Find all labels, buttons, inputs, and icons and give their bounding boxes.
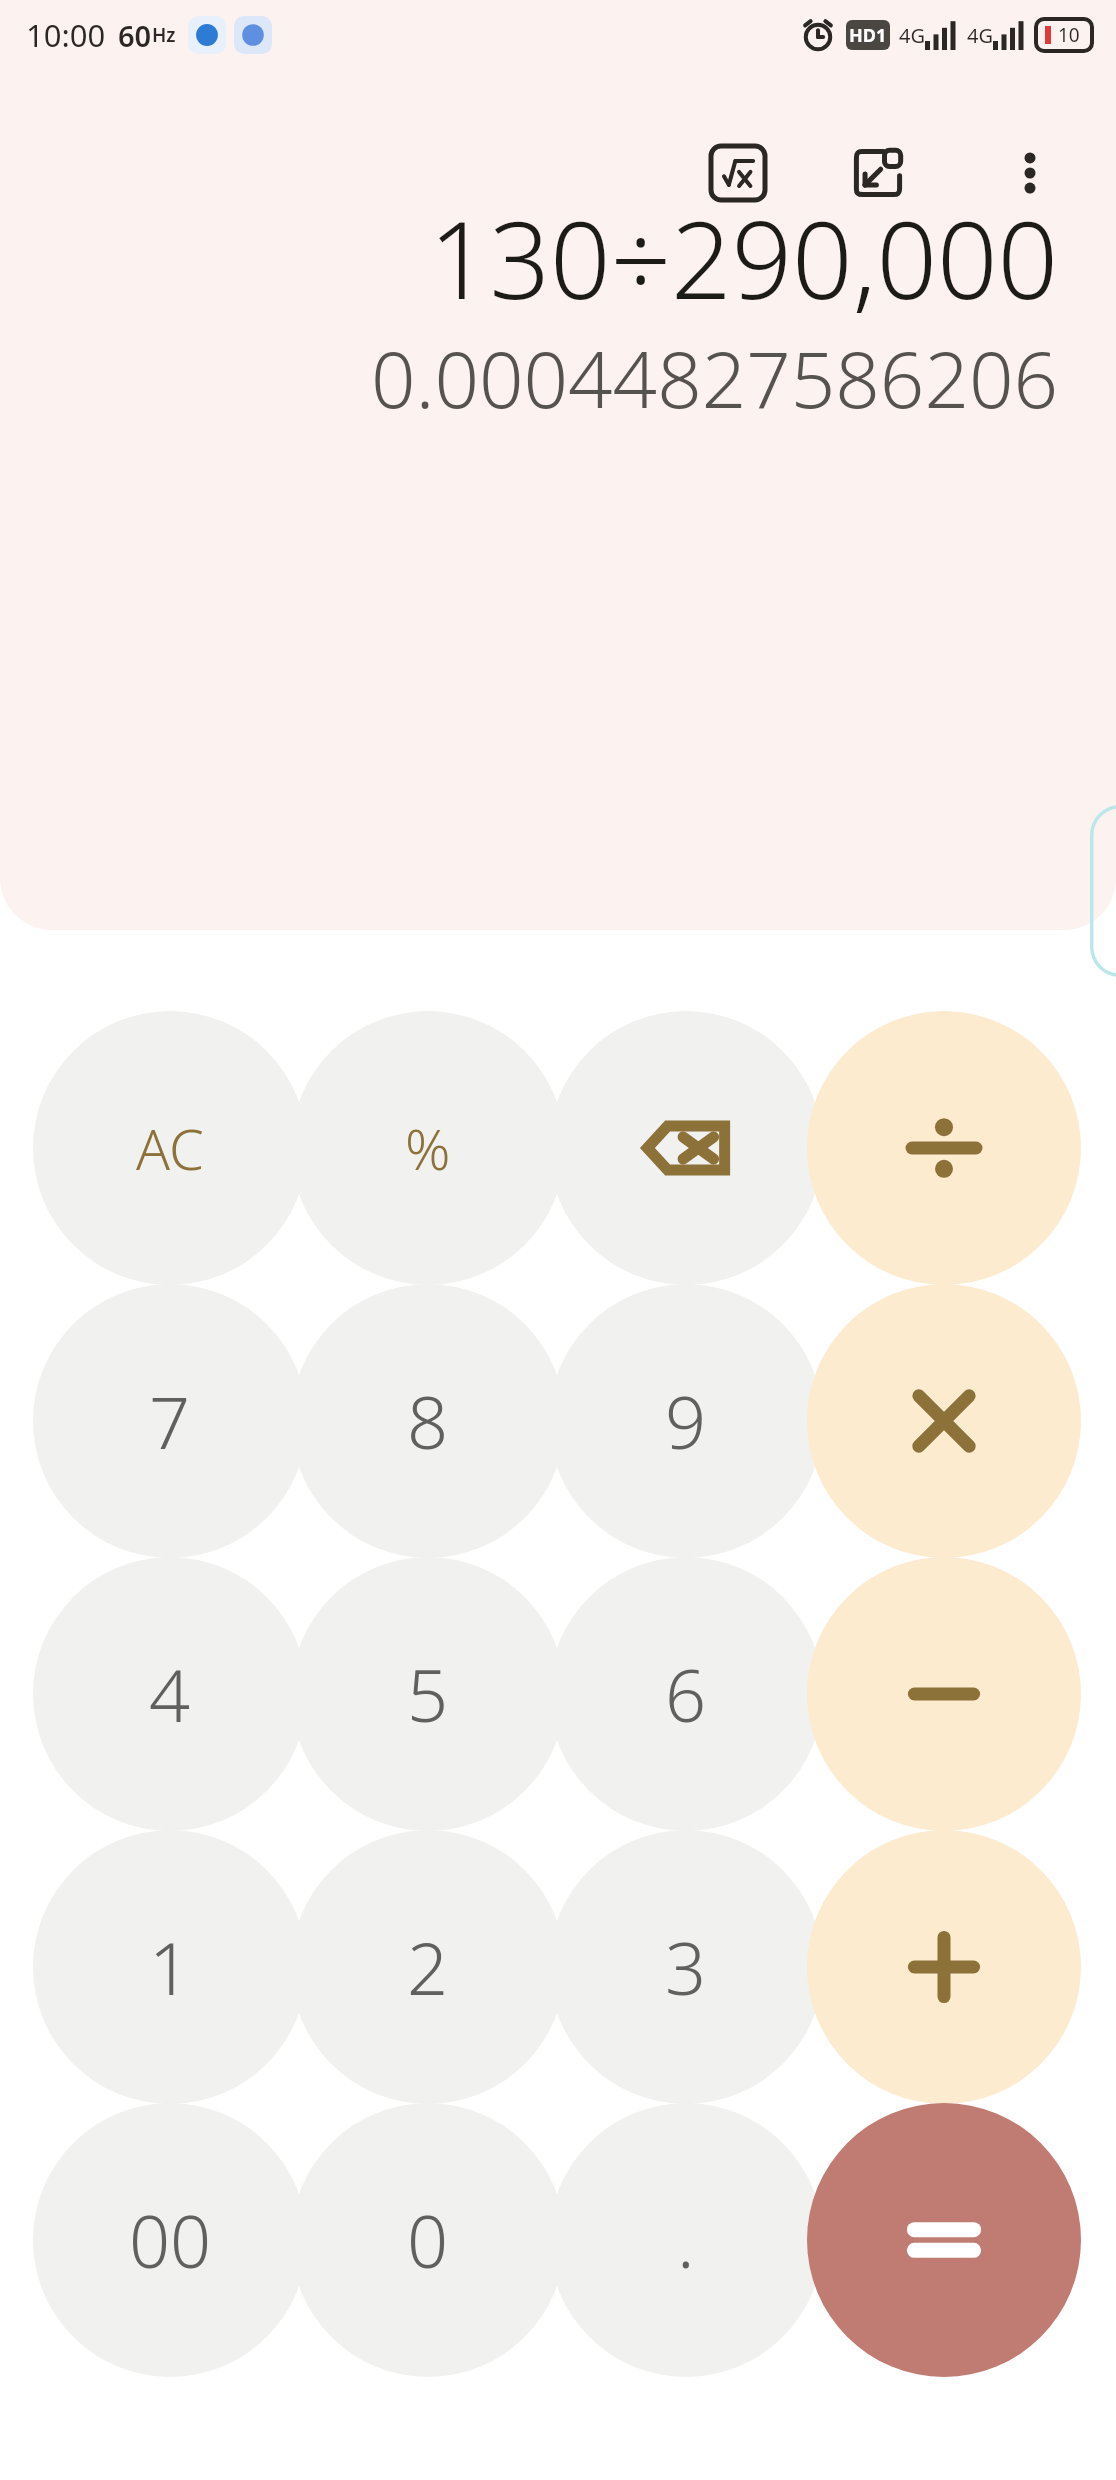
staticText: 0.00044827586206: [0, 325, 1058, 431]
staticText: 60: [118, 16, 152, 55]
staticText: 10:00: [26, 14, 106, 56]
staticText: Hz: [152, 22, 176, 48]
staticText: 4: [149, 1645, 191, 1743]
button[interactable]: 2: [291, 1830, 565, 2104]
staticText: .: [677, 2191, 695, 2289]
button[interactable]: 5: [291, 1557, 565, 1831]
staticText: 3: [665, 1918, 707, 2016]
button[interactable]: %: [291, 1011, 565, 1285]
button[interactable]: 1: [33, 1830, 307, 2104]
staticText: 9: [665, 1372, 707, 1470]
button[interactable]: [807, 1830, 1081, 2104]
button[interactable]: Backspace: [549, 1011, 823, 1285]
button[interactable]: 7: [33, 1284, 307, 1558]
button[interactable]: [807, 1011, 1081, 1285]
staticText: 10: [1058, 22, 1080, 48]
staticText: 7: [149, 1372, 191, 1470]
staticText: 4G: [899, 22, 925, 49]
staticText: 0: [407, 2191, 449, 2289]
button[interactable]: 4: [33, 1557, 307, 1831]
staticText: 6: [665, 1645, 707, 1743]
button[interactable]: [807, 1557, 1081, 1831]
button[interactable]: Scientific calculator: [693, 128, 783, 218]
button[interactable]: Side panel: [1090, 805, 1116, 977]
staticText: 130÷290,000: [0, 186, 1058, 330]
button[interactable]: 00: [33, 2103, 307, 2377]
button[interactable]: 3: [549, 1830, 823, 2104]
button[interactable]: [807, 2103, 1081, 2377]
button[interactable]: More options: [985, 128, 1075, 218]
staticText: %: [405, 1110, 451, 1186]
button[interactable]: .: [549, 2103, 823, 2377]
button[interactable]: 0: [291, 2103, 565, 2377]
staticText: 8: [407, 1372, 449, 1470]
button[interactable]: 8: [291, 1284, 565, 1558]
staticText: 5: [407, 1645, 449, 1743]
button[interactable]: 9: [549, 1284, 823, 1558]
staticText: 00: [129, 2191, 212, 2289]
staticText: HD1: [849, 23, 887, 48]
staticText: AC: [136, 1110, 204, 1186]
staticText: 4G: [967, 22, 993, 49]
staticText: 2: [407, 1918, 449, 2016]
button[interactable]: 6: [549, 1557, 823, 1831]
button[interactable]: [807, 1284, 1081, 1558]
button[interactable]: AC: [33, 1011, 307, 1285]
staticText: 1: [149, 1918, 191, 2016]
button[interactable]: Floating window: [833, 128, 923, 218]
